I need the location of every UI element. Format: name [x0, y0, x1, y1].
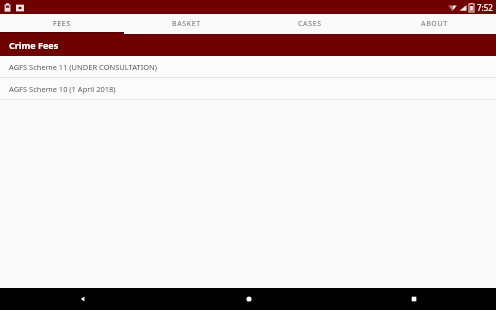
- staticText: AGFS Scheme 10 (1 April 2018): [9, 84, 116, 94]
- button[interactable]: Back: [0, 288, 166, 310]
- staticText: BASKET: [172, 19, 201, 29]
- button[interactable]: CASES: [248, 14, 372, 34]
- staticText: 7:52: [477, 2, 493, 13]
- staticText: Crime Fees: [9, 39, 59, 51]
- button[interactable]: BASKET: [124, 14, 248, 34]
- button[interactable]: Recent apps: [331, 288, 496, 310]
- button[interactable]: Home: [166, 288, 331, 310]
- button[interactable]: FEES: [0, 14, 124, 34]
- staticText: CASES: [298, 19, 322, 29]
- staticText: FEES: [53, 19, 71, 29]
- button[interactable]: AGFS Scheme 10 (1 April 2018): [0, 78, 496, 99]
- staticText: AGFS Scheme 11 (UNDER CONSULTATION): [9, 62, 158, 72]
- staticText: ABOUT: [421, 19, 448, 29]
- button[interactable]: AGFS Scheme 11 (UNDER CONSULTATION): [0, 56, 496, 77]
- button[interactable]: ABOUT: [372, 14, 496, 34]
